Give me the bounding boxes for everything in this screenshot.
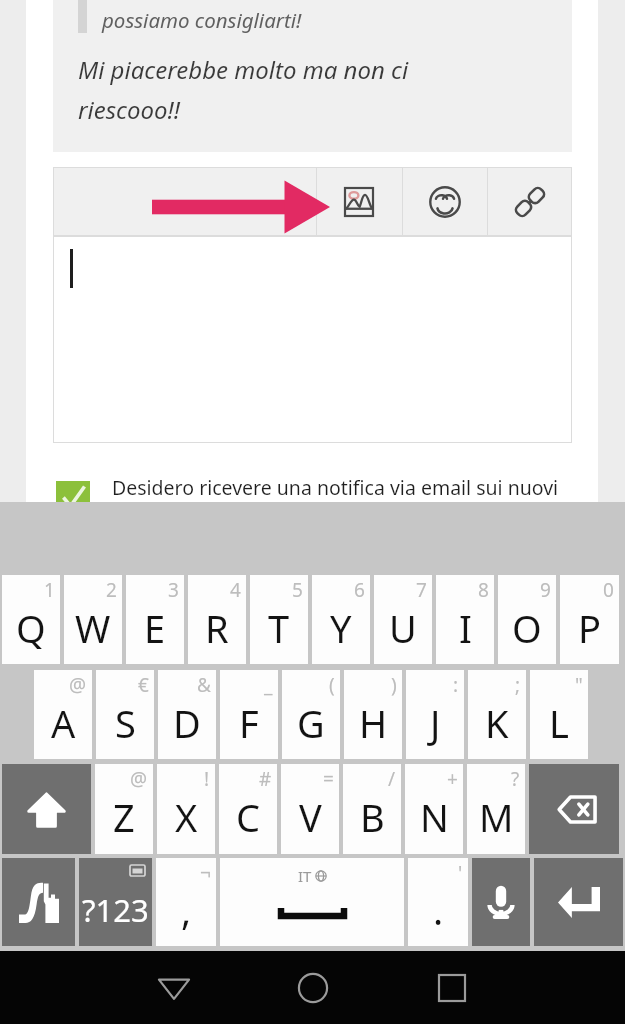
staticText: T xyxy=(268,602,290,654)
staticText: 8 xyxy=(478,577,489,603)
staticText: N xyxy=(420,791,449,843)
button[interactable]: ¬ xyxy=(156,858,216,946)
staticText: K xyxy=(485,697,509,749)
button[interactable]: ! xyxy=(157,764,215,854)
button[interactable]: ?123 xyxy=(79,858,152,946)
button[interactable]: " xyxy=(530,670,588,759)
button[interactable]: 4 xyxy=(188,575,246,664)
staticText: W xyxy=(75,602,111,654)
button[interactable]: Desidero ricevere una notifica via email… xyxy=(53,470,572,502)
button[interactable]: Shift xyxy=(2,764,91,854)
staticText: , xyxy=(181,884,192,936)
button[interactable]: 2 xyxy=(64,575,122,664)
staticText: " xyxy=(575,672,583,698)
staticText: ) xyxy=(391,672,397,698)
button[interactable]: + xyxy=(405,764,463,854)
staticText: 7 xyxy=(416,577,427,603)
staticText: F xyxy=(239,697,259,749)
button[interactable]: Enter xyxy=(534,858,623,946)
button[interactable]: Insert image xyxy=(316,167,402,236)
staticText: _ xyxy=(264,672,273,698)
button[interactable]: € xyxy=(96,670,154,759)
button[interactable]: @ xyxy=(34,670,92,759)
staticText: IT xyxy=(298,866,312,886)
button[interactable]: # xyxy=(219,764,277,854)
staticText: X xyxy=(175,791,198,843)
staticText: 4 xyxy=(230,577,241,603)
button[interactable]: ' xyxy=(408,858,468,946)
button[interactable]: 8 xyxy=(436,575,494,664)
button[interactable]: Voice input xyxy=(472,858,530,946)
staticText: C xyxy=(236,791,261,843)
staticText: A xyxy=(51,697,76,749)
button[interactable]: & xyxy=(158,670,216,759)
other: Backspace xyxy=(529,764,619,854)
other: Handwriting input xyxy=(2,858,75,946)
staticText: : xyxy=(453,672,459,698)
button[interactable]: Home xyxy=(243,951,382,1024)
staticText: R xyxy=(205,602,229,654)
staticText: U xyxy=(389,602,417,654)
button[interactable] xyxy=(53,236,572,443)
staticText: O xyxy=(512,602,542,654)
button[interactable]: _ xyxy=(220,670,278,759)
button[interactable]: Back xyxy=(104,951,243,1024)
staticText: G xyxy=(297,697,325,749)
button[interactable]: Handwriting input xyxy=(2,858,75,946)
staticText: 2 xyxy=(106,577,117,603)
staticText: P xyxy=(578,602,601,654)
staticText: L xyxy=(549,697,569,749)
button[interactable]: 7 xyxy=(374,575,432,664)
staticText: S xyxy=(115,697,136,749)
button[interactable]: : xyxy=(406,670,464,759)
staticText: D xyxy=(173,697,201,749)
staticText: I xyxy=(459,602,472,654)
staticText: ; xyxy=(515,672,521,698)
staticText: ?123 xyxy=(82,889,149,931)
staticText: @ xyxy=(130,766,148,792)
staticText: . xyxy=(433,884,444,936)
button[interactable]: ( xyxy=(282,670,340,759)
staticText: 6 xyxy=(354,577,365,603)
staticText: 3 xyxy=(168,577,179,603)
button[interactable]: 1 xyxy=(2,575,60,664)
staticText: Mi piacerebbe molto ma non ci xyxy=(78,53,409,86)
staticText: B xyxy=(360,791,385,843)
staticText: V xyxy=(299,791,322,843)
staticText: + xyxy=(447,766,458,792)
button[interactable]: ) xyxy=(344,670,402,759)
staticText: riescooo!! xyxy=(78,93,181,126)
staticText: Z xyxy=(113,791,135,843)
staticText: 1 xyxy=(44,577,55,603)
staticText: ' xyxy=(458,860,463,886)
button[interactable]: 5 xyxy=(250,575,308,664)
staticText: ? xyxy=(511,766,520,792)
other: Enter xyxy=(534,858,623,946)
button[interactable]: 0 xyxy=(560,575,619,664)
staticText: & xyxy=(197,672,211,698)
staticText: € xyxy=(138,672,149,698)
button[interactable]: = xyxy=(281,764,339,854)
staticText: E xyxy=(144,602,166,654)
button[interactable]: @ xyxy=(95,764,153,854)
button[interactable]: / xyxy=(343,764,401,854)
staticText: H xyxy=(359,697,388,749)
button[interactable]: ? xyxy=(467,764,525,854)
button[interactable]: ; xyxy=(468,670,526,759)
staticText: = xyxy=(323,766,334,792)
other: Space xyxy=(220,858,404,946)
staticText: 9 xyxy=(540,577,551,603)
button[interactable]: 6 xyxy=(312,575,370,664)
button[interactable]: 9 xyxy=(498,575,556,664)
button[interactable]: Space xyxy=(220,858,404,946)
staticText: Q xyxy=(16,602,46,654)
button[interactable]: Insert emoji xyxy=(402,167,487,236)
button[interactable]: Recents xyxy=(382,951,521,1024)
button[interactable]: Backspace xyxy=(529,764,619,854)
staticText: M xyxy=(479,791,514,843)
staticText: Y xyxy=(330,602,352,654)
button[interactable]: 3 xyxy=(126,575,184,664)
staticText: possiamo consigliarti! xyxy=(102,6,302,34)
button[interactable]: Insert link xyxy=(487,167,572,236)
staticText: J xyxy=(430,697,441,749)
